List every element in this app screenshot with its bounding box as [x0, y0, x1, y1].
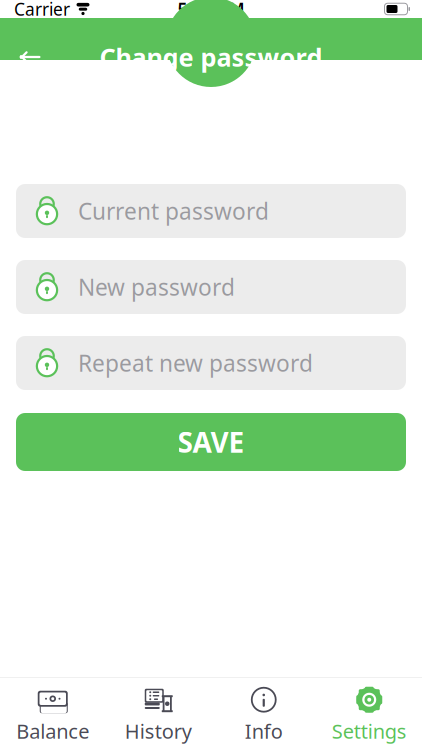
button[interactable]: History	[105, 678, 211, 750]
staticText: SAVE	[177, 423, 244, 461]
staticText: Balance	[16, 718, 89, 744]
staticText: Carrier	[14, 0, 70, 20]
staticText: 5:35 PM	[177, 0, 244, 20]
button[interactable]: Balance	[0, 678, 105, 750]
staticText: Info	[245, 718, 283, 744]
staticText: Current password	[78, 196, 269, 226]
button[interactable]: SAVE	[16, 413, 406, 471]
staticText: Repeat new password	[78, 348, 313, 378]
staticText: Change password	[99, 40, 322, 74]
staticText: Settings	[332, 718, 407, 744]
staticText: New password	[78, 272, 235, 302]
button[interactable]: Back	[8, 35, 52, 79]
button[interactable]: Info	[211, 678, 316, 750]
button[interactable]: Settings	[316, 678, 422, 750]
staticText: History	[125, 718, 192, 744]
